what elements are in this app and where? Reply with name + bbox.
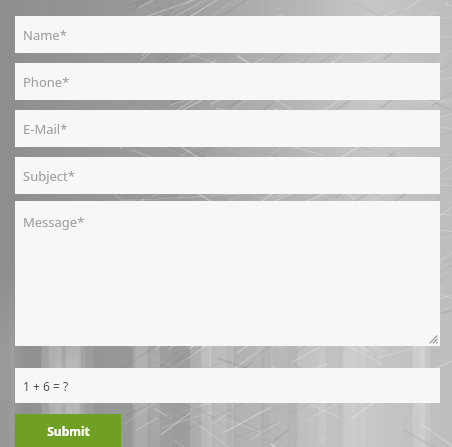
button[interactable]: Name* bbox=[15, 16, 440, 53]
staticText: 1 + 6 = ? bbox=[23, 378, 69, 394]
button[interactable]: 1 + 6 = ? bbox=[15, 368, 440, 403]
button[interactable]: Submit bbox=[15, 414, 121, 447]
staticText: Subject* bbox=[23, 167, 75, 185]
staticText: Phone* bbox=[23, 73, 70, 91]
staticText: Message* bbox=[23, 213, 85, 231]
button[interactable]: E-Mail* bbox=[15, 110, 440, 147]
staticText: Submit bbox=[47, 423, 90, 439]
staticText: E-Mail* bbox=[23, 120, 68, 138]
button[interactable]: Phone* bbox=[15, 63, 440, 100]
staticText: Name* bbox=[23, 26, 67, 44]
button[interactable]: Subject* bbox=[15, 157, 440, 194]
button[interactable]: Message* bbox=[15, 201, 440, 346]
